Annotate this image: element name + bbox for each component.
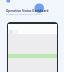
staticText: Operation Status Dashboard [6, 9, 49, 13]
staticText: Monitor live service health metrics [6, 13, 42, 16]
